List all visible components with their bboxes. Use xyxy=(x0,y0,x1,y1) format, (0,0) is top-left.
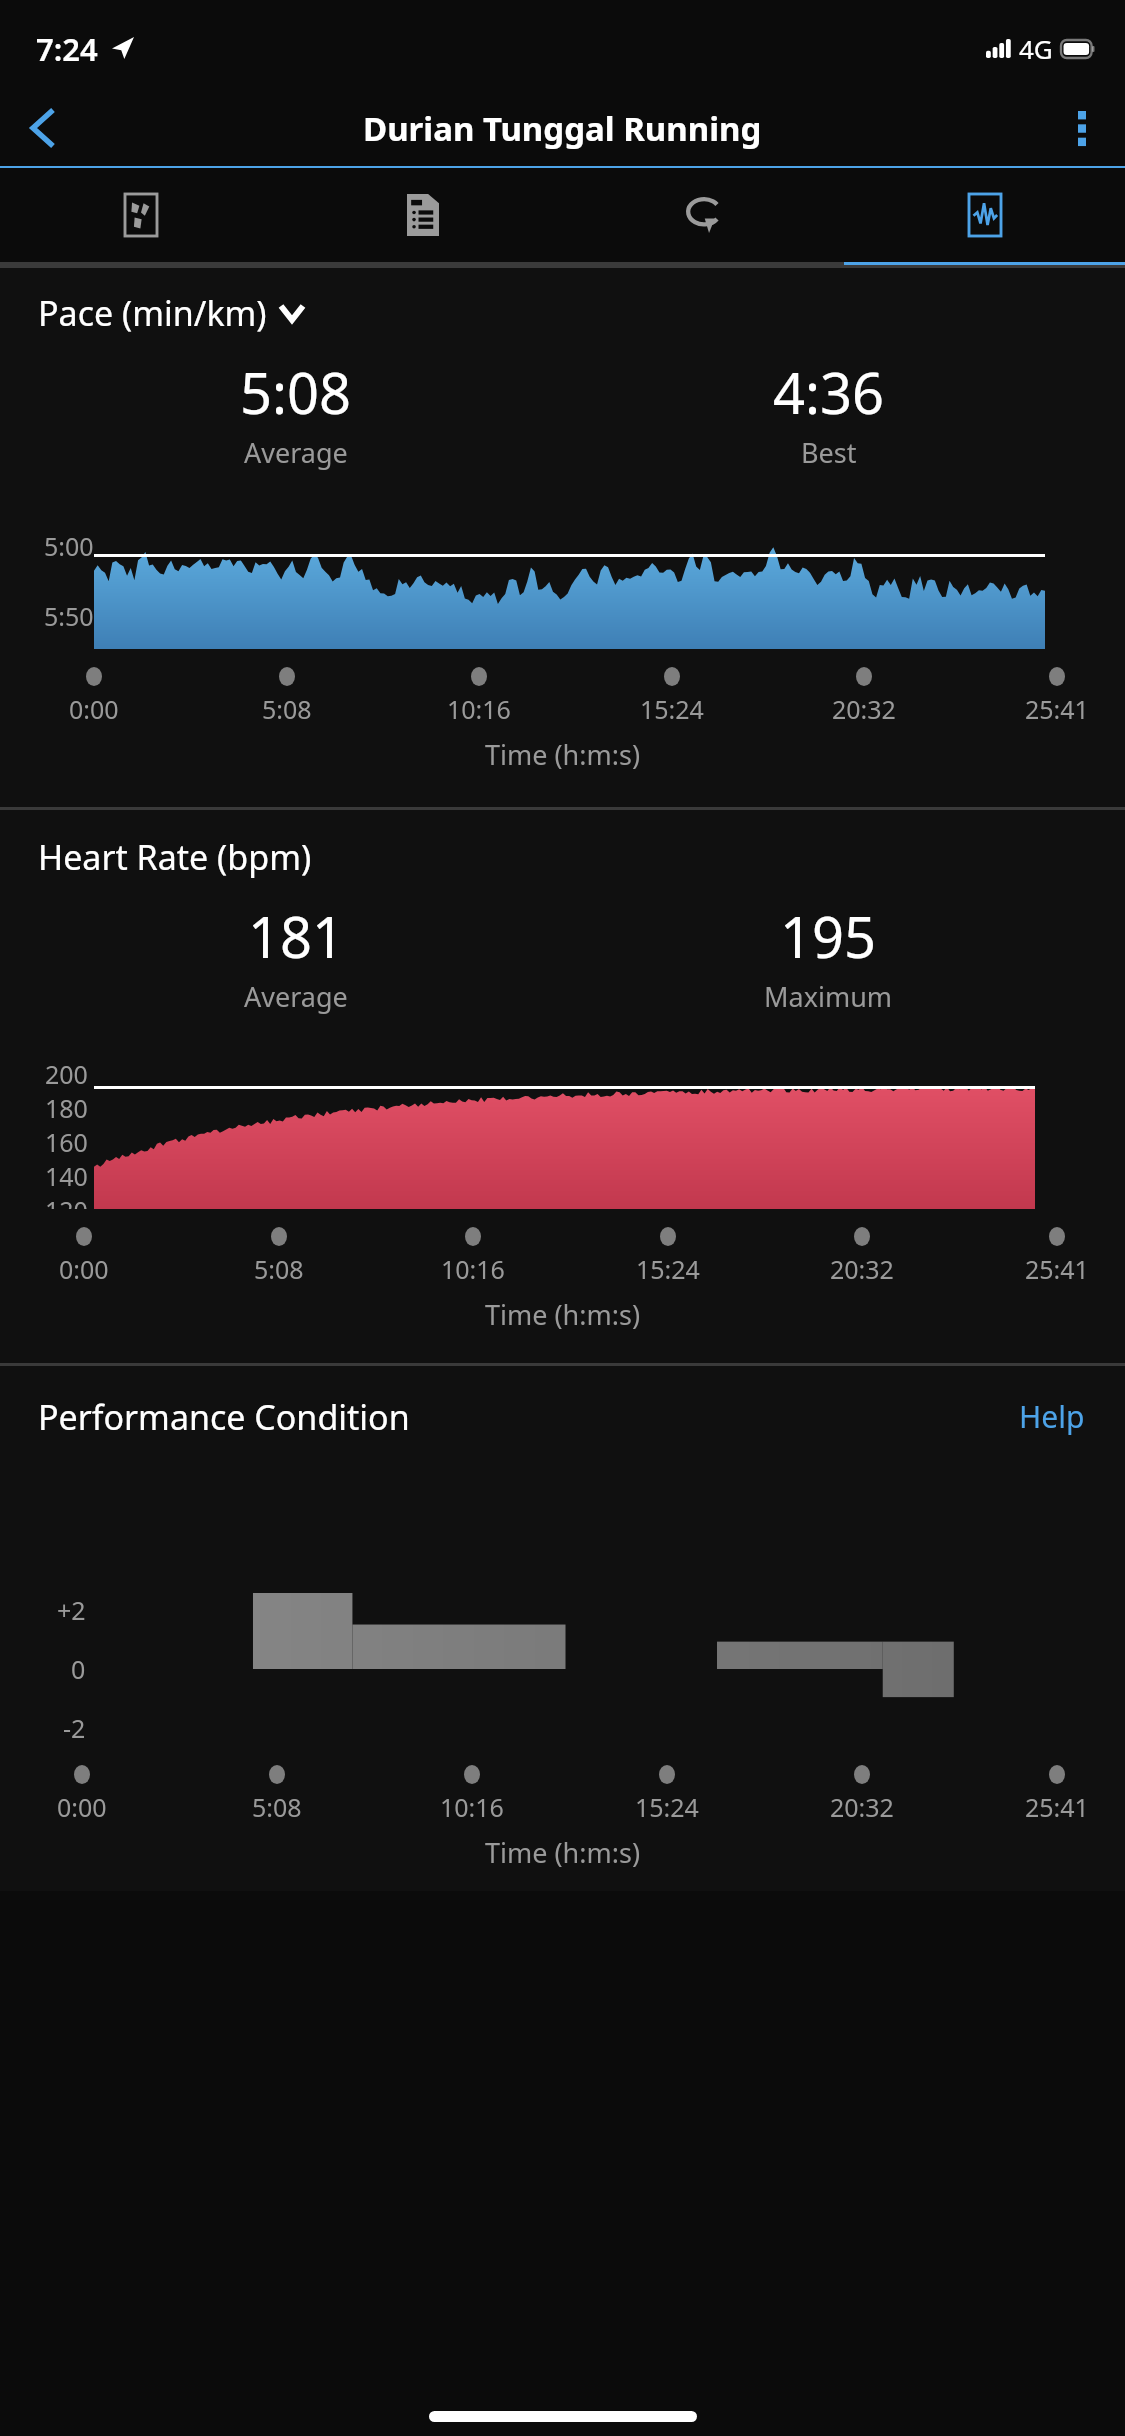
staticText: 0:00 xyxy=(69,692,119,726)
staticText: 5:08 xyxy=(252,1790,302,1824)
staticText: +2 xyxy=(57,1593,86,1627)
staticText: Average xyxy=(244,978,348,1015)
staticText: 140 xyxy=(45,1159,88,1193)
button[interactable]: Pace (min/km) xyxy=(38,290,303,336)
staticText: 10:16 xyxy=(447,692,511,726)
staticText: 5:00 xyxy=(44,529,94,563)
staticText: 160 xyxy=(45,1125,88,1159)
staticText: Heart Rate (bpm) xyxy=(38,834,312,880)
button[interactable]: Help xyxy=(1013,1390,1091,1443)
button[interactable]: Map xyxy=(0,168,282,262)
staticText: 5:08 xyxy=(240,354,352,430)
button[interactable]: Details xyxy=(282,168,563,262)
staticText: 25:41 xyxy=(1025,1252,1089,1286)
staticText: 25:41 xyxy=(1025,692,1089,726)
staticText: 0 xyxy=(71,1652,86,1686)
button[interactable]: Back xyxy=(0,88,86,168)
staticText: Average xyxy=(244,434,348,471)
staticText: 7:24 xyxy=(36,28,98,70)
staticText: 4:36 xyxy=(773,354,885,430)
button[interactable]: Laps xyxy=(563,168,844,262)
staticText: 200 xyxy=(45,1057,88,1091)
staticText: 25:41 xyxy=(1025,1790,1089,1824)
staticText: Time (h:m:s) xyxy=(485,1834,641,1871)
staticText: -2 xyxy=(63,1711,86,1745)
staticText: 15:24 xyxy=(640,692,704,726)
staticText: Time (h:m:s) xyxy=(485,1296,641,1333)
staticText: 4G xyxy=(1019,31,1053,66)
staticText: 10:16 xyxy=(440,1790,504,1824)
staticText: 20:32 xyxy=(832,692,896,726)
staticText: Pace (min/km) xyxy=(38,290,267,336)
staticText: 5:08 xyxy=(254,1252,304,1286)
staticText: Performance Condition xyxy=(38,1394,410,1440)
staticText: Time (h:m:s) xyxy=(485,736,641,773)
staticText: 120 xyxy=(45,1193,88,1209)
staticText: 181 xyxy=(248,898,345,974)
staticText: 5:08 xyxy=(262,692,312,726)
staticText: 0:00 xyxy=(59,1252,109,1286)
staticText: 0:00 xyxy=(57,1790,107,1824)
staticText: 195 xyxy=(780,898,877,974)
button[interactable]: Charts xyxy=(844,168,1125,262)
staticText: 20:32 xyxy=(830,1252,894,1286)
staticText: 180 xyxy=(45,1091,88,1125)
staticText: 20:32 xyxy=(830,1790,894,1824)
staticText: Best xyxy=(801,434,857,471)
staticText: 15:24 xyxy=(635,1790,699,1824)
staticText: Help xyxy=(1019,1396,1085,1437)
staticText: 15:24 xyxy=(636,1252,700,1286)
button[interactable]: More options xyxy=(1039,88,1125,168)
staticText: 10:16 xyxy=(441,1252,505,1286)
staticText: 5:50 xyxy=(44,599,94,633)
staticText: Durian Tunggal Running xyxy=(363,106,762,151)
staticText: Maximum xyxy=(764,978,893,1015)
